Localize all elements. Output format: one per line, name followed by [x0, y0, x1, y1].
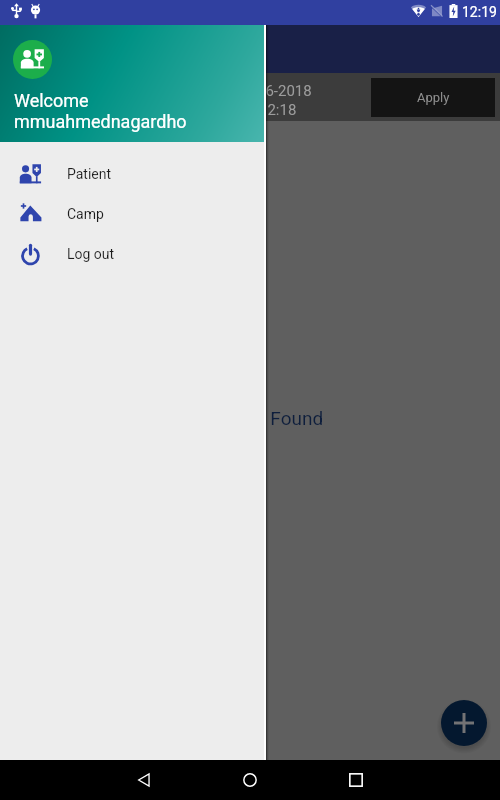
staticText: Log out — [67, 246, 115, 262]
button[interactable]: Recents — [335, 760, 377, 800]
staticText: Apply — [417, 90, 450, 105]
button[interactable]: Log out — [0, 234, 266, 274]
button[interactable]: Camp — [0, 194, 266, 234]
staticText: Camp — [67, 206, 104, 222]
button[interactable]: Back — [123, 760, 165, 800]
staticText: 12:19 — [462, 4, 497, 20]
staticText: 26-06-2018 — [236, 82, 312, 100]
staticText: 12:18 — [259, 101, 297, 119]
staticText: Welcome — [14, 90, 89, 111]
staticText: mmuahmednagardho — [14, 111, 187, 132]
button[interactable]: Apply — [371, 78, 495, 117]
button[interactable]: Add — [441, 700, 487, 746]
staticText: No Record Found — [177, 407, 324, 429]
button[interactable]: Patient — [0, 154, 266, 194]
button[interactable]: Home — [229, 760, 271, 800]
staticText: Patient — [67, 166, 112, 182]
